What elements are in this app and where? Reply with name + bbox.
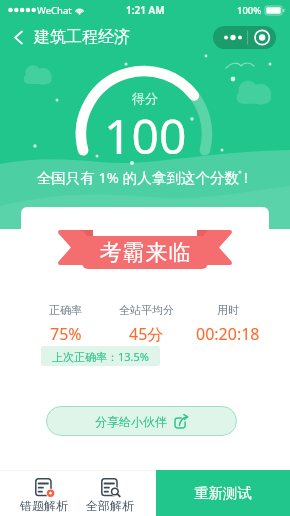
- staticText: 全部解析: [86, 498, 134, 513]
- button[interactable]: 全部解析: [72, 472, 148, 516]
- staticText: 建筑工程经济: [34, 27, 130, 47]
- button[interactable]: 分享给小伙伴: [46, 406, 237, 436]
- staticText: 考霸来临: [99, 239, 191, 267]
- staticText: 75%: [50, 323, 82, 345]
- staticText: 错题解析: [20, 498, 68, 513]
- staticText: 用时: [217, 303, 239, 317]
- staticText: 45分: [129, 323, 164, 345]
- button[interactable]: Menu: [213, 26, 276, 49]
- staticText: 1:21 AM: [126, 3, 165, 17]
- staticText: 正确率: [49, 303, 82, 317]
- staticText: 100: [104, 103, 187, 168]
- staticText: 上次正确率：13.5%: [52, 349, 149, 364]
- staticText: 100%: [237, 4, 262, 17]
- staticText: 重新测试: [194, 484, 252, 502]
- staticText: 全站平均分: [119, 303, 174, 317]
- button[interactable]: Back: [6, 25, 30, 49]
- button[interactable]: 错题解析: [6, 472, 82, 516]
- button[interactable]: 重新测试: [156, 470, 290, 516]
- staticText: 分享给小伙伴: [95, 414, 167, 429]
- staticText: 得分: [132, 90, 158, 106]
- staticText: WeChat: [37, 4, 72, 17]
- staticText: 全国只有 1% 的人拿到这个分数！: [0, 167, 290, 187]
- staticText: 00:20:18: [196, 323, 260, 345]
